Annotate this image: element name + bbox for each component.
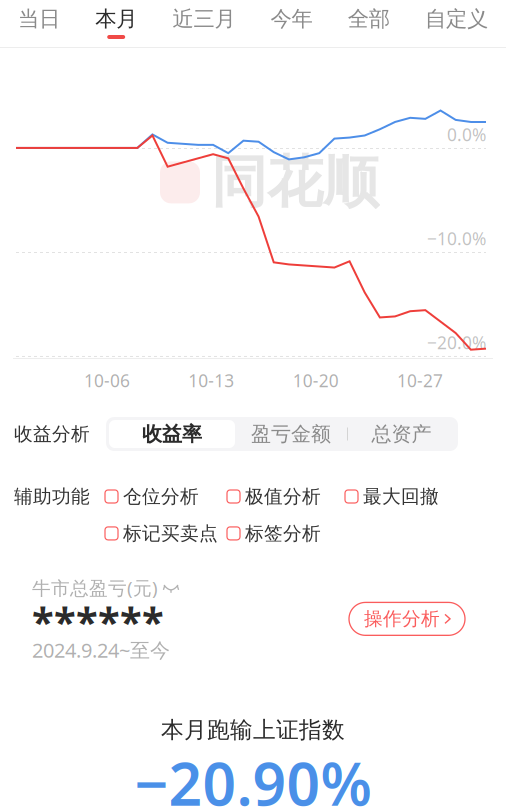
button[interactable]: 极值分析 [227, 485, 321, 508]
staticText: −10.0% [427, 227, 486, 250]
staticText: 标签分析 [245, 522, 321, 545]
staticText: 近三月 [172, 6, 235, 32]
staticText: 本月 [95, 6, 137, 32]
button[interactable]: 标签分析 [227, 522, 321, 545]
staticText: 今年 [271, 6, 313, 32]
staticText: 10-06 [84, 369, 130, 392]
staticText: 盈亏金额 [251, 422, 331, 446]
button[interactable]: 本月 [91, 8, 141, 39]
staticText: −20.90% [134, 744, 371, 808]
staticText: 操作分析 [364, 607, 440, 630]
staticText: 本月跑输上证指数 [161, 716, 345, 744]
staticText: 2024.9.24~至今 [32, 637, 170, 663]
button[interactable]: 标记买卖点 [105, 522, 218, 545]
staticText: 牛市总盈亏(元) [32, 575, 158, 600]
button[interactable]: 盈亏金额 [235, 420, 347, 448]
button[interactable]: 总资产 [348, 420, 455, 448]
button[interactable]: 仓位分析 [105, 485, 199, 508]
staticText: 辅助功能 [14, 485, 90, 508]
staticText: 10-20 [293, 369, 339, 392]
button[interactable]: 自定义 [421, 8, 492, 39]
staticText: 极值分析 [245, 485, 321, 508]
staticText: ****** [32, 594, 164, 647]
button[interactable]: 最大回撤 [345, 485, 439, 508]
staticText: 标记买卖点 [123, 522, 218, 545]
staticText: 收益分析 [14, 423, 90, 445]
staticText: 自定义 [425, 6, 488, 32]
staticText: 当日 [18, 6, 60, 32]
staticText: 收益率 [142, 422, 202, 446]
staticText: 同花顺 [211, 148, 379, 217]
staticText: −20.0% [427, 331, 486, 354]
button[interactable]: 当日 [14, 8, 64, 39]
staticText: 0.0% [447, 123, 486, 146]
button[interactable]: 操作分析 [349, 602, 465, 635]
staticText: 全部 [348, 6, 390, 32]
staticText: 仓位分析 [123, 485, 199, 508]
button[interactable]: 全部 [344, 8, 394, 39]
staticText: 10-13 [188, 369, 234, 392]
staticText: 总资产 [371, 422, 431, 446]
staticText: 10-27 [397, 369, 443, 392]
button[interactable]: 今年 [267, 8, 317, 39]
staticText: 最大回撤 [363, 485, 439, 508]
button[interactable]: 收益率 [109, 420, 235, 448]
button[interactable]: 近三月 [168, 8, 239, 39]
